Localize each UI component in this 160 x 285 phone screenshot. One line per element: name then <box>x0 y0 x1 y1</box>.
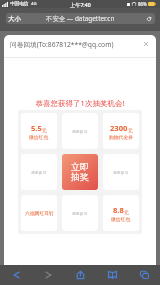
staticText: 感谢参与 <box>113 170 129 175</box>
staticText: 感谢参与 <box>72 211 88 216</box>
button[interactable]: 感谢参与 <box>21 154 57 190</box>
staticText: 4G <box>31 1 37 7</box>
staticText: 2300 <box>110 123 128 133</box>
button[interactable]: Share <box>64 265 96 285</box>
staticText: 8.8 <box>113 205 124 215</box>
staticText: 元 <box>124 209 129 215</box>
staticText: 86% <box>138 1 147 7</box>
button[interactable]: 2300 <box>103 113 139 149</box>
staticText: 元 <box>42 127 47 133</box>
button[interactable]: Tabs <box>128 265 160 285</box>
staticText: 恭喜您获得了1次抽奖机会! <box>4 98 156 108</box>
button[interactable]: Back <box>0 265 32 285</box>
button[interactable]: 感谢参与 <box>62 113 98 149</box>
button[interactable]: 8.8 <box>103 195 139 231</box>
staticText: 元 <box>128 127 133 133</box>
button[interactable]: 感谢参与 <box>62 195 98 231</box>
button[interactable]: 感谢参与 <box>103 154 139 190</box>
staticText: 中国电信 <box>10 1 29 7</box>
button[interactable]: Reload <box>146 16 152 22</box>
staticText: 微信红包 <box>29 134 49 140</box>
staticText: 感谢参与 <box>72 129 88 134</box>
staticText: 5.5 <box>31 123 42 133</box>
staticText: 上午7:40 <box>70 1 91 8</box>
staticText: 微信红包 <box>111 216 131 222</box>
button[interactable]: 六福网红耳钉 <box>21 195 57 231</box>
button[interactable]: 5.5 <box>21 113 57 149</box>
staticText: 立即 抽奖 <box>71 161 89 183</box>
staticText: 问卷回填(To:867812***@qq.com) <box>10 40 114 49</box>
staticText: 购物代金券 <box>109 134 133 140</box>
button[interactable]: Forward <box>32 265 64 285</box>
button[interactable]: 不安全 — datagetter.cn <box>6 13 155 24</box>
staticText: 感谢参与 <box>31 170 47 175</box>
staticText: 大小 <box>8 15 21 23</box>
button[interactable]: Close <box>142 40 150 48</box>
staticText: 六福网红耳钉 <box>25 210 54 216</box>
button[interactable]: Text size <box>8 15 21 23</box>
button[interactable]: Bookmarks <box>96 265 128 285</box>
staticText: 不安全 — datagetter.cn <box>46 14 115 23</box>
button[interactable]: 立即 抽奖 <box>62 154 98 190</box>
